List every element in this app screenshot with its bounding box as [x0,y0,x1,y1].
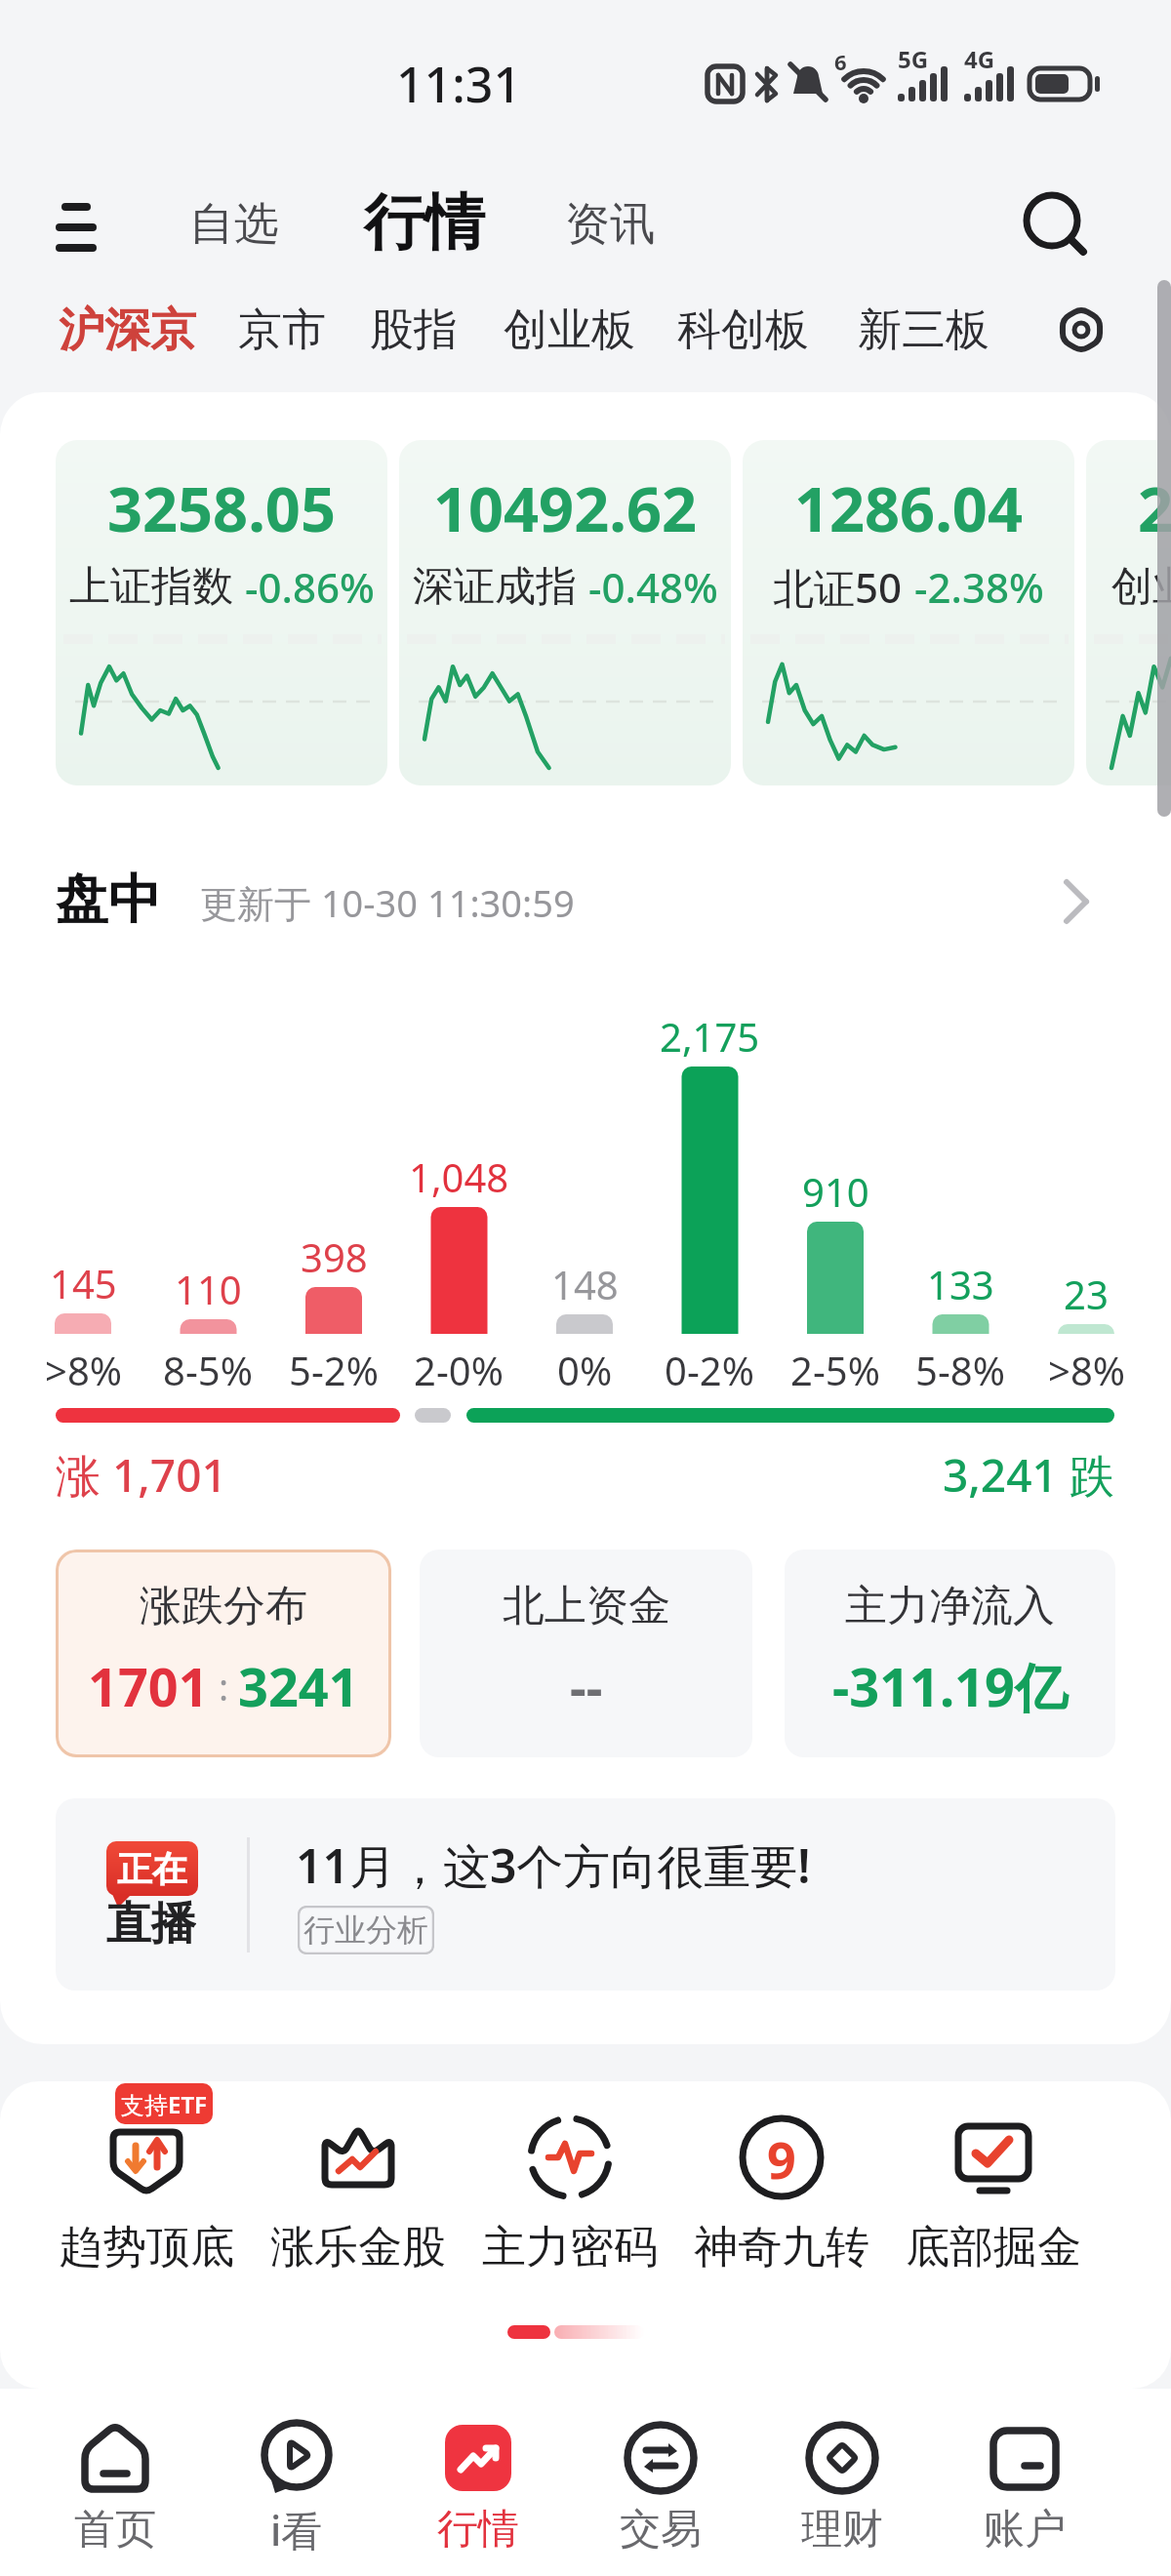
button[interactable]: 自选 [166,181,303,268]
button[interactable]: 9 [679,2091,884,2315]
staticText: 京市 [238,302,326,358]
staticText: 更新于 10-30 11:30:59 [200,877,575,928]
staticText: 新三板 [858,302,989,358]
staticText: 趋势顶底 [59,2220,234,2275]
button[interactable]: 北上资金 [420,1550,752,1757]
staticText: : [209,1661,238,1711]
staticText: 支持ETF [121,2088,207,2120]
staticText: 自选 [189,196,279,253]
staticText: 直播 [106,1896,196,1951]
staticText: 3241 [238,1650,359,1722]
staticText: 5G [898,43,929,68]
button[interactable]: 行情 [337,171,512,273]
button[interactable]: 首页 [27,2389,203,2576]
staticText: 1701 [88,1650,209,1722]
staticText: 2-0% [414,1344,504,1394]
button[interactable]: 理财 [754,2389,930,2576]
staticText: i看 [270,2502,323,2556]
staticText: -311.19亿 [832,1650,1068,1722]
staticText: 133 [927,1258,994,1307]
staticText: >8% [45,1344,122,1394]
staticText: 理财 [801,2504,883,2556]
staticText: 23 [1064,1268,1109,1316]
button[interactable]: 资讯 [542,181,678,268]
button[interactable]: 1286.04 [743,440,1074,785]
staticText: 北证50 [773,559,903,614]
staticText: 6 [834,47,847,72]
staticText: 5-2% [289,1344,379,1394]
button[interactable]: 账户 [937,2389,1112,2576]
button[interactable]: 盘中 [0,861,1171,948]
button[interactable] [54,195,102,256]
staticText: 科创板 [677,302,809,358]
staticText: 10492.62 [433,466,697,539]
staticText: 股指 [370,302,458,358]
staticText: -2.38% [914,559,1044,614]
staticText: 3258.05 [107,466,336,539]
staticText: 145 [50,1257,117,1306]
staticText: 行业分析 [303,1911,428,1950]
staticText: 910 [802,1165,869,1214]
staticText: 11月，这3个方向很重要! [296,1833,811,1894]
staticText: 涨 1,701 [56,1444,227,1503]
staticText: 0% [557,1344,613,1394]
button[interactable]: 涨跌分布 [56,1550,391,1757]
staticText: 148 [551,1258,619,1307]
staticText: 2235.18 [1138,466,1171,539]
staticText: 正在 [117,1847,187,1891]
button[interactable]: 交易 [573,2389,748,2576]
staticText: 深证成指 [413,561,577,613]
button[interactable]: 行情 [390,2389,566,2576]
button[interactable] [1054,302,1109,357]
button[interactable]: 3258.05 [56,440,387,785]
staticText: 5-8% [915,1344,1005,1394]
staticText: 2-5% [790,1344,880,1394]
button[interactable]: 底部掘金 [891,2091,1096,2315]
staticText: 沪深京 [59,302,196,359]
button[interactable]: 科创板 [673,301,812,359]
button[interactable]: i看 [209,2389,384,2576]
button[interactable] [1015,185,1093,263]
button[interactable]: 创业板 [500,301,638,359]
button[interactable]: 10492.62 [399,440,731,785]
staticText: 首页 [74,2504,156,2556]
staticText: 4G [964,43,995,68]
button[interactable]: 主力密码 [467,2091,672,2315]
staticText: 行情 [364,184,485,261]
staticText: 涨跌分布 [140,1580,307,1632]
button[interactable]: 趋势顶底 [44,2091,249,2315]
staticText: 2,175 [660,1010,760,1059]
button[interactable]: 股指 [369,301,459,359]
staticText: 账户 [984,2504,1066,2556]
button[interactable]: 2235.18 [1086,440,1171,785]
staticText: 8-5% [163,1344,253,1394]
button[interactable]: 新三板 [854,301,992,359]
staticText: >8% [1048,1344,1125,1394]
button[interactable]: 主力净流入 [785,1550,1115,1757]
staticText: 1286.04 [794,466,1023,539]
staticText: 创业板 [504,302,635,358]
staticText: 交易 [620,2504,702,2556]
staticText: 9 [767,2124,796,2191]
staticText: -- [570,1652,603,1721]
staticText: 110 [175,1263,242,1311]
staticText: 398 [301,1230,368,1279]
button[interactable]: 正在 [56,1798,1115,1991]
staticText: 0-2% [665,1344,754,1394]
staticText: 创业板指 [1111,561,1171,613]
button[interactable]: 京市 [237,301,327,359]
staticText: 神奇九转 [694,2220,869,2275]
staticText: 盘中 [56,866,161,933]
staticText: -0.86% [245,559,375,614]
staticText: 11:31 [396,51,521,113]
staticText: 资讯 [565,196,655,253]
staticText: -0.48% [588,559,718,614]
button[interactable]: 涨乐金股 [256,2091,461,2315]
staticText: 3,241 跌 [943,1444,1114,1503]
staticText: 主力净流入 [845,1580,1055,1632]
staticText: 北上资金 [503,1580,670,1632]
staticText: 主力密码 [482,2220,658,2275]
staticText: 行情 [437,2504,519,2556]
staticText: 上证指数 [69,561,233,613]
staticText: 1,048 [409,1150,509,1199]
